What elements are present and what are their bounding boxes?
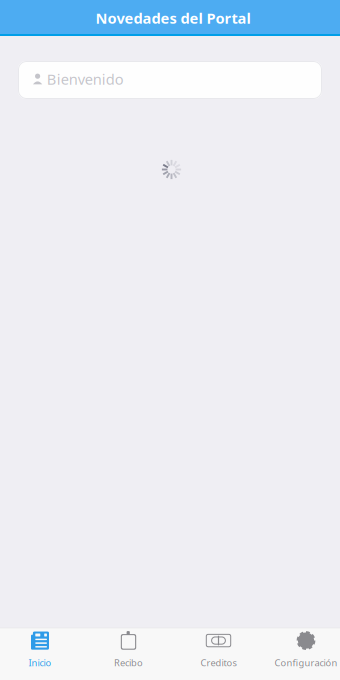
staticText: Bienvenido (47, 69, 124, 89)
button[interactable]: Recibo (85, 628, 170, 680)
staticText: Inicio (28, 657, 51, 669)
staticText: Creditos (200, 657, 236, 669)
button[interactable]: Configuración (255, 628, 340, 680)
button[interactable]: Inicio (0, 628, 85, 680)
staticText: Novedades del Portal (95, 8, 250, 28)
staticText: Configuración (274, 657, 337, 669)
staticText: Recibo (114, 657, 143, 669)
button[interactable]: Creditos (170, 628, 255, 680)
